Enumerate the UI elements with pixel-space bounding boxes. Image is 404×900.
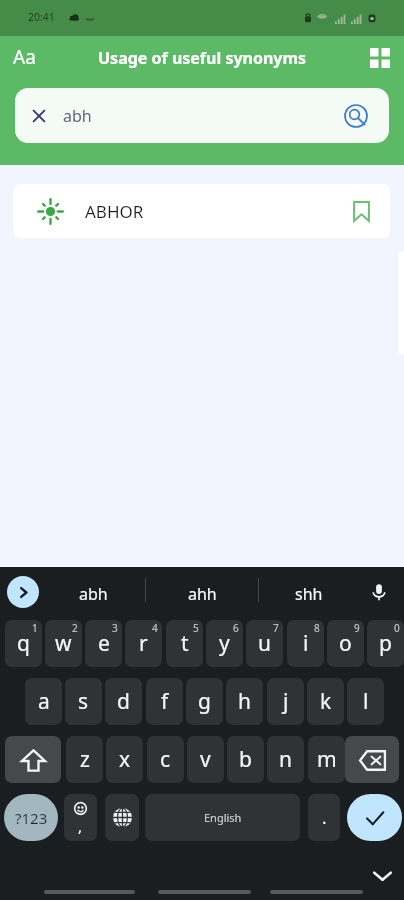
staticText: n: [279, 745, 292, 774]
button[interactable]: j: [267, 678, 304, 725]
staticText: Aa: [13, 44, 36, 70]
staticText: x: [119, 745, 131, 774]
staticText: u: [258, 629, 271, 658]
staticText: g: [198, 687, 211, 716]
button[interactable]: p: [367, 620, 404, 667]
other: Backspace: [359, 750, 386, 771]
button[interactable]: Change language: [105, 794, 139, 841]
button[interactable]: Symbols: [4, 794, 58, 841]
button[interactable]: Enter: [347, 794, 402, 841]
staticText: a: [38, 687, 50, 716]
button[interactable]: Shift: [5, 736, 61, 783]
button[interactable]: Hide keyboard: [371, 864, 394, 887]
button[interactable]: u: [246, 620, 283, 667]
staticText: j: [283, 687, 289, 716]
staticText: w: [55, 629, 72, 658]
button[interactable]: n: [267, 736, 304, 783]
staticText: v: [200, 745, 211, 774]
staticText: f: [161, 687, 169, 716]
button[interactable]: v: [187, 736, 224, 783]
staticText: b: [239, 745, 252, 774]
staticText: 0: [394, 621, 400, 635]
staticText: 3: [112, 621, 118, 635]
staticText: e: [98, 629, 110, 658]
button[interactable]: g: [186, 678, 223, 725]
button[interactable]: a: [25, 678, 62, 725]
button[interactable]: Space: [145, 794, 300, 841]
button[interactable]: Backspace: [345, 736, 399, 783]
staticText: shh: [295, 583, 323, 605]
button[interactable]: d: [105, 678, 142, 725]
staticText: ahh: [188, 583, 217, 605]
button[interactable]: h: [226, 678, 263, 725]
staticText: c: [160, 745, 171, 774]
staticText: l: [363, 687, 369, 716]
other: Clear: [33, 110, 45, 122]
staticText: Usage of useful synonyms: [98, 47, 307, 69]
staticText: t: [181, 629, 189, 658]
button[interactable]: Expand suggestions: [7, 576, 39, 608]
staticText: English: [204, 810, 242, 825]
button[interactable]: q: [5, 620, 42, 667]
button[interactable]: Period: [308, 794, 340, 841]
staticText: ABHOR: [85, 200, 144, 223]
staticText: 8: [314, 621, 320, 635]
staticText: m: [317, 745, 337, 774]
button[interactable]: l: [347, 678, 384, 725]
button[interactable]: y: [206, 620, 243, 667]
button[interactable]: Emoji: [64, 794, 97, 841]
button[interactable]: w: [45, 620, 82, 667]
button[interactable]: abh: [43, 567, 143, 620]
button[interactable]: Voice input: [367, 580, 391, 604]
button[interactable]: m: [308, 736, 345, 783]
other: Change language: [112, 807, 133, 828]
button[interactable]: Clear: [15, 88, 389, 143]
staticText: 1: [32, 621, 38, 635]
button[interactable]: z: [66, 736, 103, 783]
button[interactable]: o: [327, 620, 364, 667]
button[interactable]: ahh: [152, 567, 252, 620]
staticText: h: [238, 687, 251, 716]
button[interactable]: f: [146, 678, 183, 725]
button[interactable]: s: [65, 678, 102, 725]
button[interactable]: ABHOR: [13, 184, 390, 238]
staticText: i: [303, 629, 309, 658]
staticText: z: [80, 745, 90, 774]
staticText: abh: [63, 105, 92, 127]
staticText: 2: [72, 621, 78, 635]
button[interactable]: b: [227, 736, 264, 783]
staticText: ,: [78, 816, 83, 836]
staticText: 4: [152, 621, 158, 635]
staticText: y: [219, 629, 230, 658]
button[interactable]: c: [147, 736, 184, 783]
staticText: q: [17, 629, 30, 658]
staticText: p: [379, 629, 392, 658]
staticText: s: [78, 687, 89, 716]
other: Bookmark: [353, 201, 370, 222]
staticText: 6: [233, 621, 239, 635]
staticText: 9: [354, 621, 360, 635]
staticText: o: [339, 629, 352, 658]
button[interactable]: k: [307, 678, 344, 725]
button[interactable]: e: [85, 620, 122, 667]
staticText: ?123: [15, 808, 48, 828]
staticText: 7: [273, 621, 279, 635]
staticText: 20:41: [28, 10, 55, 24]
button[interactable]: Aa: [0, 37, 49, 79]
button[interactable]: x: [106, 736, 143, 783]
button[interactable]: t: [166, 620, 203, 667]
staticText: r: [139, 629, 148, 658]
staticText: .: [322, 806, 327, 829]
staticText: abh: [79, 583, 108, 605]
button[interactable]: Grid view: [356, 40, 404, 76]
other: Search: [344, 104, 368, 128]
staticText: k: [320, 687, 332, 716]
button[interactable]: shh: [259, 567, 359, 620]
button[interactable]: r: [125, 620, 162, 667]
other: Shift: [21, 749, 46, 772]
staticText: 5: [193, 621, 199, 635]
button[interactable]: i: [287, 620, 324, 667]
staticText: d: [117, 687, 130, 716]
